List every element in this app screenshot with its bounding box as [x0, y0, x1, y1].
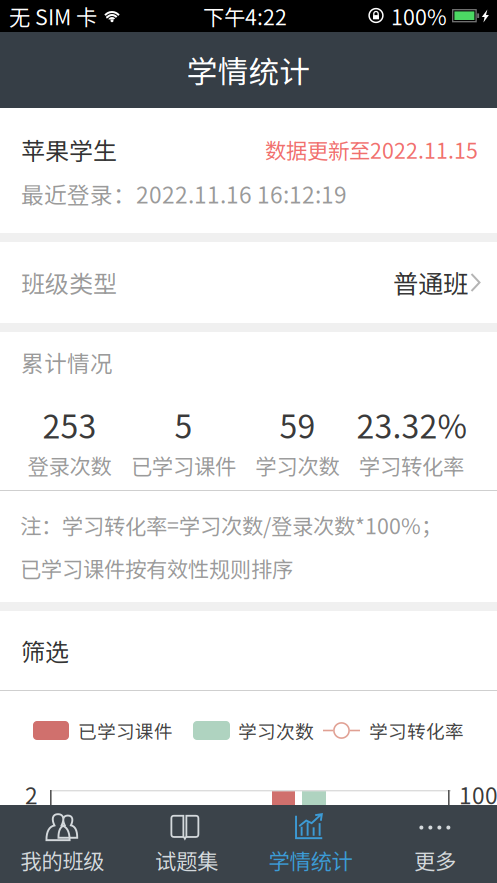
button[interactable]: 班级类型 [0, 242, 497, 323]
staticText: 23.32% [356, 401, 466, 448]
staticText: 登录次数 [27, 450, 111, 481]
staticText: 注：学习转化率=学习次数/登录次数*100%； [20, 510, 442, 540]
staticText: 2 [25, 778, 38, 811]
staticText: 数据更新至2022.11.15 [265, 134, 478, 165]
staticText: 100% [459, 778, 497, 811]
staticText: 学习转化率 [359, 450, 464, 481]
staticText: 已学习课件 [78, 717, 173, 744]
staticText: 最近登录：2022.11.16 16:12:19 [21, 177, 347, 210]
staticText: 学情统计 [186, 48, 310, 92]
staticText: 学习次数 [238, 717, 314, 744]
staticText: 苹果学生 [21, 132, 117, 167]
button[interactable]: 学情统计 [248, 805, 373, 883]
staticText: 100% [391, 1, 447, 31]
button[interactable]: 我的班级 [0, 805, 124, 883]
staticText: 试题集 [155, 845, 218, 875]
staticText: 我的班级 [20, 845, 104, 875]
staticText: 学习次数 [255, 450, 339, 481]
staticText: 学习转化率 [369, 717, 464, 744]
button[interactable]: 更多 [373, 805, 497, 883]
staticText: 5 [174, 401, 192, 448]
staticText: 学情统计 [269, 845, 353, 875]
staticText: 无 SIM 卡 [9, 1, 97, 31]
staticText: 筛选 [21, 633, 69, 668]
staticText: 59 [279, 401, 315, 448]
staticText: 更多 [414, 845, 456, 875]
staticText: 已学习课件 [131, 450, 236, 481]
button[interactable]: 试题集 [124, 805, 248, 883]
staticText: 253 [42, 401, 96, 448]
staticText: 已学习课件按有效性规则排序 [20, 552, 293, 583]
staticText: 下午4:22 [203, 1, 287, 31]
staticText: 班级类型 [21, 265, 117, 300]
staticText: 普通班 [393, 264, 468, 301]
staticText: 累计情况 [21, 346, 113, 378]
